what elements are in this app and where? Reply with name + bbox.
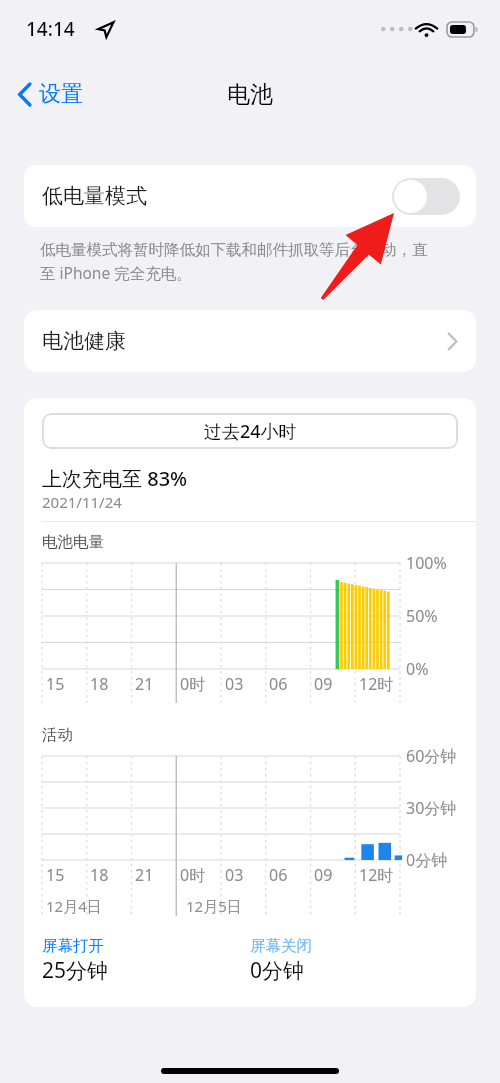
staticText: 低电量模式将暂时降低如下载和邮件抓取等后台活动，直 至 iPhone 完全充电。: [40, 240, 428, 284]
button[interactable]: 过去24小时: [42, 413, 458, 449]
staticText: 18: [90, 864, 109, 886]
staticText: 30分钟: [406, 797, 457, 819]
button[interactable]: 低电量模式: [24, 165, 476, 227]
staticText: 18: [90, 673, 109, 695]
staticText: 2021/11/24: [42, 492, 122, 512]
staticText: 0时: [180, 864, 206, 886]
staticText: 电池健康: [42, 328, 126, 354]
staticText: 09: [314, 673, 333, 695]
staticText: 06: [269, 864, 288, 886]
staticText: 屏幕关闭: [250, 936, 312, 956]
button[interactable]: 电池健康: [24, 310, 476, 372]
staticText: 0分钟: [406, 849, 448, 871]
staticText: 12月5日: [186, 896, 242, 916]
staticText: 0时: [180, 673, 206, 695]
staticText: 21: [135, 673, 154, 695]
staticText: 15: [46, 864, 65, 886]
staticText: 12时: [359, 673, 394, 695]
staticText: 50%: [406, 605, 438, 627]
staticText: 过去24小时: [204, 419, 297, 444]
button[interactable]: 屏幕关闭: [250, 936, 476, 985]
staticText: 100%: [406, 552, 447, 574]
staticText: 14:14: [26, 16, 75, 42]
staticText: 12月4日: [46, 896, 102, 916]
button[interactable]: 屏幕打开: [42, 936, 250, 985]
staticText: 21: [135, 864, 154, 886]
staticText: 0%: [406, 658, 429, 680]
button[interactable]: 设置: [14, 76, 87, 112]
staticText: 25分钟: [42, 956, 109, 985]
staticText: 12时: [359, 864, 394, 886]
staticText: 03: [225, 864, 244, 886]
staticText: 电池: [227, 80, 273, 109]
staticText: 设置: [39, 80, 83, 108]
staticText: 03: [225, 673, 244, 695]
button[interactable]: 低电量模式开关: [392, 178, 460, 215]
staticText: 06: [269, 673, 288, 695]
staticText: 屏幕打开: [42, 936, 104, 956]
staticText: 15: [46, 673, 65, 695]
staticText: 低电量模式: [42, 183, 147, 209]
staticText: 60分钟: [406, 745, 457, 767]
staticText: 09: [314, 864, 333, 886]
staticText: 上次充电至 83%: [42, 465, 188, 492]
staticText: 电池电量: [42, 532, 104, 552]
staticText: 活动: [42, 725, 73, 745]
staticText: 0分钟: [250, 956, 305, 985]
